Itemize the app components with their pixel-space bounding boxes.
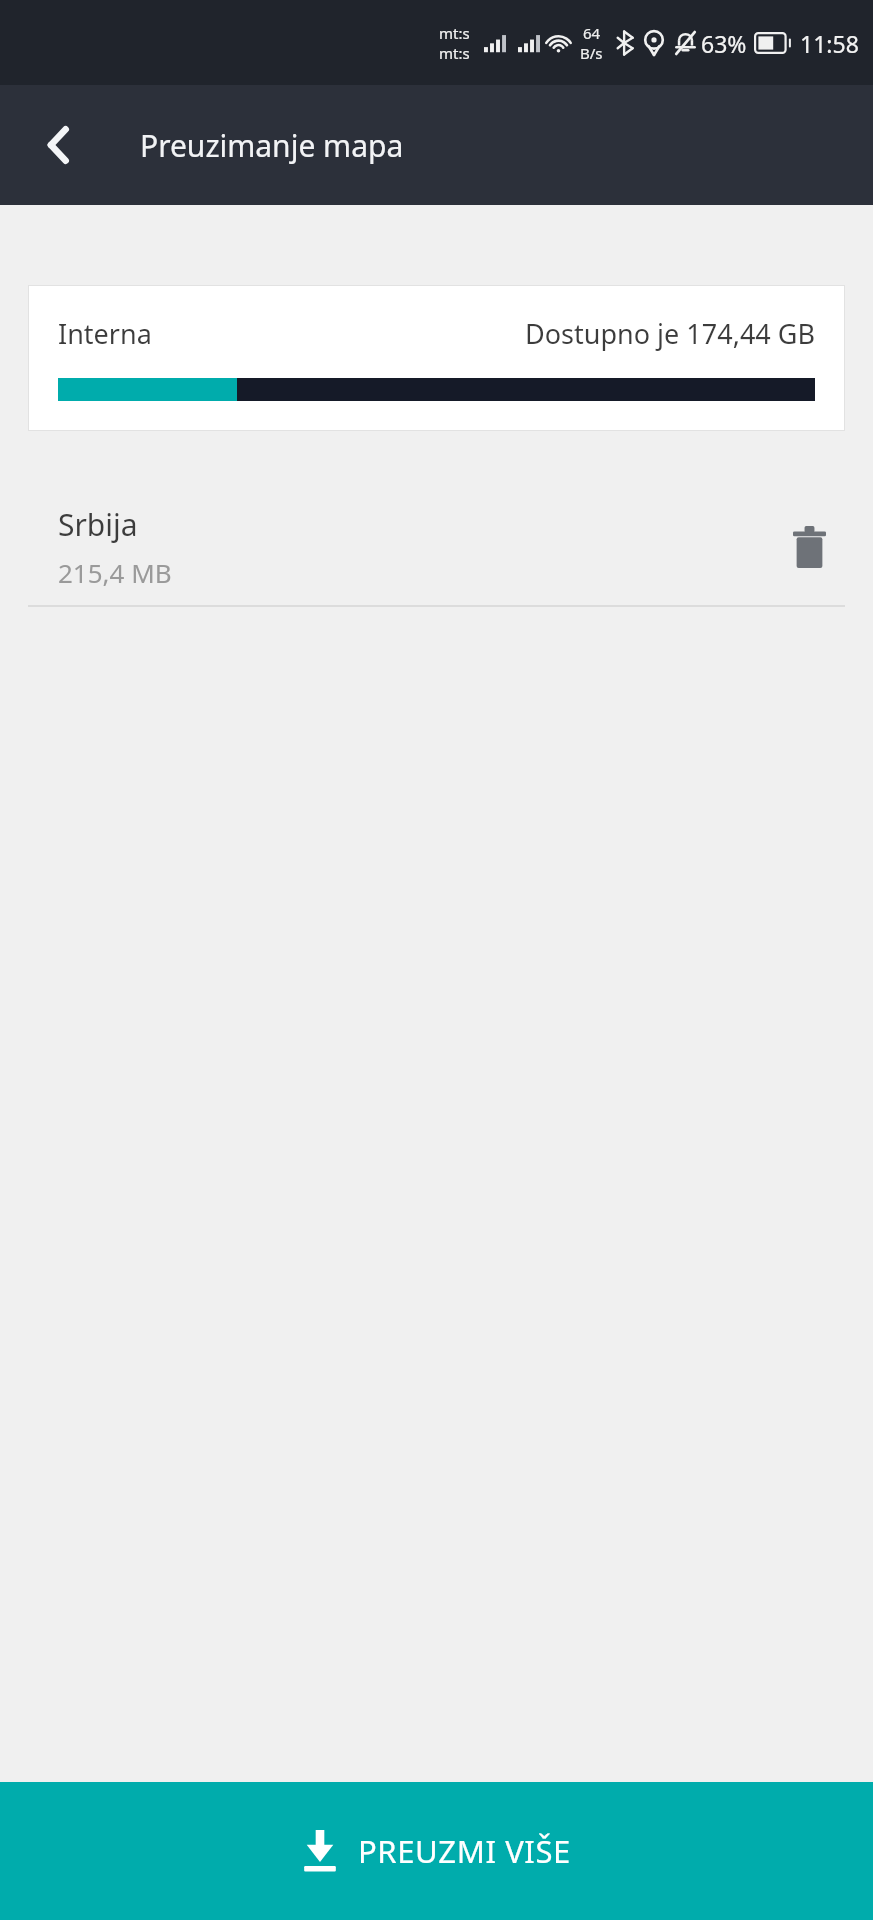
button[interactable]: Back: [22, 109, 94, 181]
staticText: 64: [583, 23, 601, 43]
staticText: Interna: [58, 315, 152, 352]
staticText: Dostupno je 174,44 GB: [525, 315, 815, 352]
button[interactable]: PREUZMI VIŠE: [0, 1782, 873, 1920]
button[interactable]: Srbija: [0, 488, 873, 605]
staticText: 215,4 MB: [58, 555, 172, 590]
staticText: B/s: [580, 43, 603, 63]
button[interactable]: Interna: [28, 285, 845, 431]
button[interactable]: Delete: [773, 511, 845, 583]
staticText: mt:s: [439, 43, 470, 63]
staticText: PREUZMI VIŠE: [358, 1830, 571, 1872]
staticText: 11:58: [800, 28, 859, 59]
staticText: mt:s: [439, 23, 470, 43]
staticText: 63%: [701, 28, 747, 59]
staticText: Preuzimanje mapa: [140, 125, 404, 166]
staticText: Srbija: [58, 504, 138, 545]
